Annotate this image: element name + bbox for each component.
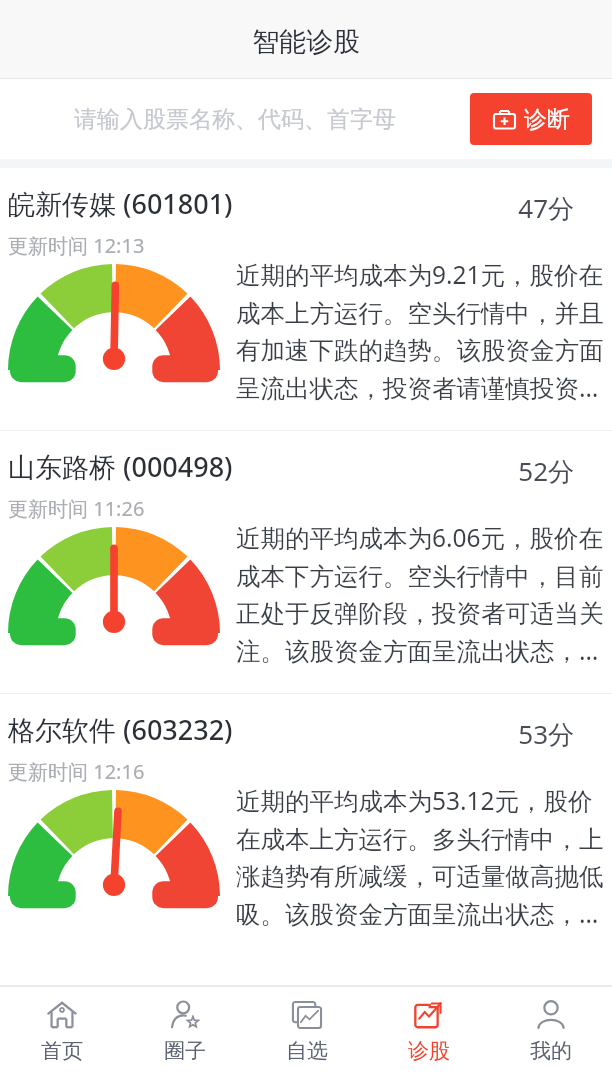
staticText: 我的 <box>530 1038 572 1064</box>
button[interactable]: 圈子 <box>123 987 246 1073</box>
staticText: 53分 <box>0 716 574 752</box>
staticText: 诊断 <box>524 105 570 134</box>
staticText: 更新时间 11:26 <box>8 495 145 522</box>
other: 诊股 <box>411 997 447 1033</box>
staticText: 请输入股票名称、代码、首字母 <box>74 105 396 134</box>
button[interactable]: 请输入股票名称、代码、首字母 <box>22 91 422 147</box>
staticText: 近期的平均成本为53.12元，股价在成本上方运行。多头行情中，上涨趋势有所减缓，… <box>236 784 604 930</box>
button[interactable]: 皖新传媒 (601801) <box>0 168 612 430</box>
staticText: 智能诊股 <box>252 25 360 59</box>
staticText: 更新时间 12:16 <box>8 758 145 785</box>
staticText: 自选 <box>286 1038 328 1064</box>
staticText: 山东路桥 (000498) <box>8 448 233 485</box>
staticText: 诊股 <box>408 1038 450 1064</box>
other: 首页 <box>44 997 80 1033</box>
staticText: 更新时间 12:13 <box>8 232 145 259</box>
button[interactable]: 山东路桥 (000498) <box>0 431 612 693</box>
button[interactable]: 诊股 <box>368 987 490 1073</box>
other: 自选 <box>289 997 325 1033</box>
other: 圈子 <box>167 997 203 1033</box>
staticText: 47分 <box>0 190 574 226</box>
staticText: 52分 <box>0 453 574 489</box>
button[interactable]: 自选 <box>246 987 368 1073</box>
staticText: 格尔软件 (603232) <box>8 711 233 748</box>
staticText: 圈子 <box>164 1038 206 1064</box>
other: 我的 <box>533 997 569 1033</box>
button[interactable]: 格尔软件 (603232) <box>0 694 612 956</box>
button[interactable]: 诊断 <box>470 93 592 145</box>
button[interactable]: 我的 <box>490 987 612 1073</box>
button[interactable]: 首页 <box>0 987 123 1073</box>
staticText: 近期的平均成本为6.06元，股价在成本下方运行。空头行情中，目前正处于反弹阶段，… <box>236 521 604 667</box>
staticText: 近期的平均成本为9.21元，股价在成本上方运行。空头行情中，并且有加速下跌的趋势… <box>236 258 604 404</box>
staticText: 皖新传媒 (601801) <box>8 185 233 222</box>
staticText: 首页 <box>41 1038 83 1064</box>
